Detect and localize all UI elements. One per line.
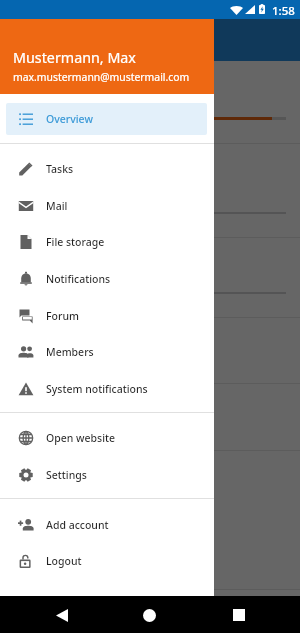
staticText: Overview: [46, 112, 93, 126]
button[interactable]: Logout: [6, 545, 207, 577]
button[interactable]: File storage: [6, 226, 207, 258]
staticText: Tasks: [46, 162, 74, 176]
staticText: Mustermann, Max: [13, 48, 136, 67]
button[interactable]: Mail: [6, 190, 207, 222]
staticText: Logout: [46, 554, 82, 568]
button[interactable]: Home: [134, 602, 164, 628]
button[interactable]: Members: [6, 336, 207, 368]
staticText: Open website: [46, 431, 116, 445]
other: Mobile signal: [245, 5, 255, 14]
staticText: Settings: [46, 468, 87, 482]
other: Wi-Fi: [230, 5, 243, 15]
staticText: File storage: [46, 235, 105, 249]
button[interactable]: Open website: [6, 422, 207, 454]
other: Battery: [259, 4, 265, 14]
button[interactable]: Forum: [6, 300, 207, 332]
button[interactable]: Recent apps: [224, 602, 254, 628]
button[interactable]: Settings: [6, 459, 207, 491]
staticText: max.mustermann@mustermail.com: [13, 70, 190, 84]
button[interactable]: Back: [47, 602, 77, 628]
button[interactable]: Tasks: [6, 153, 207, 185]
staticText: Members: [46, 345, 94, 359]
button[interactable]: System notifications: [6, 373, 207, 405]
staticText: 1:58: [272, 3, 295, 19]
staticText: Notifications: [46, 272, 111, 286]
staticText: System notifications: [46, 382, 148, 396]
button[interactable]: Add account: [6, 509, 207, 541]
button[interactable]: Overview: [6, 103, 207, 135]
staticText: Add account: [46, 518, 109, 532]
staticText: Forum: [46, 309, 79, 323]
button[interactable]: Notifications: [6, 263, 207, 295]
staticText: Mail: [46, 199, 68, 213]
